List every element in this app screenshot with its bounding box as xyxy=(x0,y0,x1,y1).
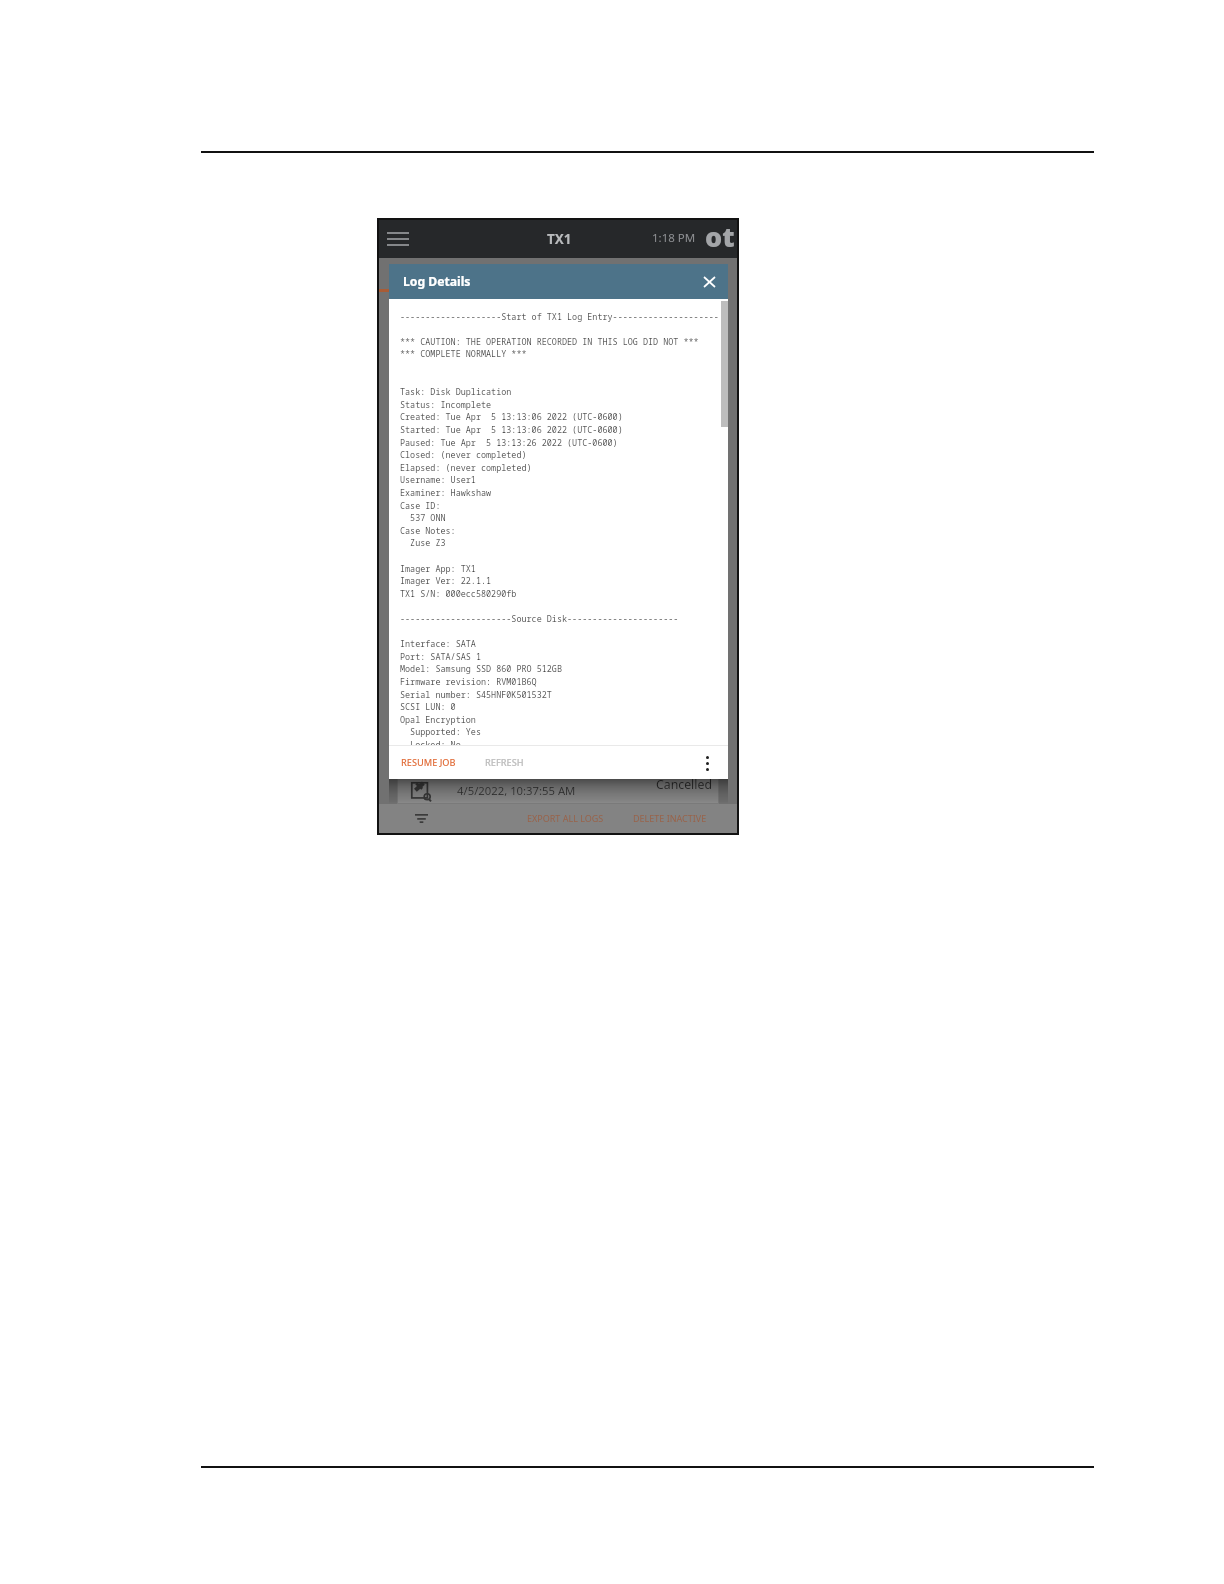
button[interactable]: Open navigation menu xyxy=(383,224,413,254)
button[interactable]: 4/5/2022, 10:37:55 AM xyxy=(397,759,719,804)
staticText: Task: Disk Duplication xyxy=(400,386,512,398)
staticText: Cancelled xyxy=(656,776,712,793)
staticText: Created: Tue Apr 5 13:13:06 2022 (UTC-06… xyxy=(400,411,623,423)
button[interactable]: EXPORT ALL LOGS xyxy=(525,810,606,826)
button[interactable]: Close dialog xyxy=(697,270,721,294)
staticText: RESUME JOB xyxy=(401,756,456,769)
staticText: *** CAUTION: THE OPERATION RECORDED IN T… xyxy=(400,336,699,348)
staticText: Status: Incomplete xyxy=(400,399,492,411)
staticText: SCSI LUN: 0 xyxy=(400,701,456,713)
staticText: REFRESH xyxy=(485,756,524,769)
staticText: Imager App: TX1 xyxy=(400,563,476,575)
staticText: Case ID: xyxy=(400,500,441,512)
staticText: Opal Encryption xyxy=(400,714,476,726)
staticText: Imager Ver: 22.1.1 xyxy=(400,575,492,587)
staticText: Examiner: Hawkshaw xyxy=(400,487,492,499)
staticText: Case Notes: xyxy=(400,525,456,537)
staticText: 537 ONN xyxy=(400,512,446,524)
staticText: Elapsed: (never completed) xyxy=(400,462,532,474)
staticText: Paused: Tue Apr 5 13:13:26 2022 (UTC-060… xyxy=(400,437,618,449)
staticText: EXPORT ALL LOGS xyxy=(527,812,604,824)
staticText: Model: Samsung SSD 860 PRO 512GB xyxy=(400,663,562,675)
button[interactable]: DELETE INACTIVE xyxy=(631,810,709,826)
staticText: Log Details xyxy=(403,273,471,290)
staticText: Zuse Z3 xyxy=(400,537,446,549)
staticText: Serial number: S45HNF0K501532T xyxy=(400,689,552,701)
staticText: Started: Tue Apr 5 13:13:06 2022 (UTC-06… xyxy=(400,424,623,436)
staticText: ----------------------Source Disk-------… xyxy=(400,613,679,625)
button[interactable]: REFRESH xyxy=(481,752,528,773)
staticText: Username: User1 xyxy=(400,474,476,486)
staticText: Supported: Yes xyxy=(400,726,481,738)
staticText: ot xyxy=(705,220,735,255)
button[interactable]: RESUME JOB xyxy=(397,752,460,773)
staticText: Port: SATA/SAS 1 xyxy=(400,651,481,663)
staticText: *** COMPLETE NORMALLY *** xyxy=(400,348,527,360)
staticText: DELETE INACTIVE xyxy=(633,812,707,824)
staticText: --------------------Start of TX1 Log Ent… xyxy=(400,311,719,323)
staticText: Closed: (never completed) xyxy=(400,449,527,461)
staticText: TX1 xyxy=(547,230,572,248)
staticText: Firmware revision: RVM01B6Q xyxy=(400,676,537,688)
staticText: 1:18 PM xyxy=(652,230,696,246)
staticText: Interface: SATA xyxy=(400,638,476,650)
staticText: 4/5/2022, 10:37:55 AM xyxy=(457,783,576,798)
staticText: TX1 S/N: 000ecc580290fb xyxy=(400,588,517,600)
button[interactable]: Filter logs xyxy=(410,807,432,829)
button[interactable]: More options xyxy=(695,751,719,775)
staticText: Locked: No xyxy=(400,739,461,746)
